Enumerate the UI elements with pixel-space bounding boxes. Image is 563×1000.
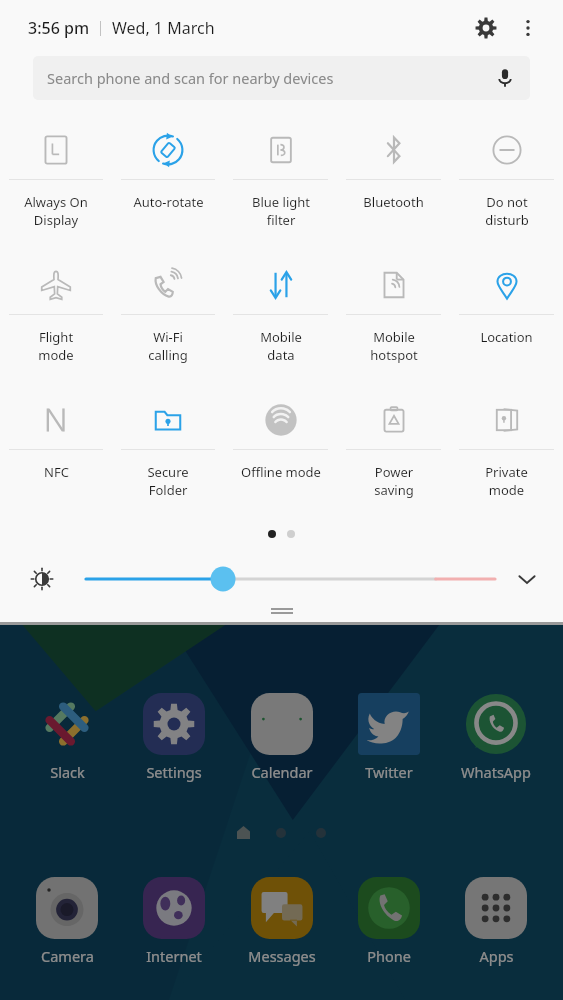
staticText: 3:56 pm xyxy=(28,17,90,39)
staticText: Calendar xyxy=(251,762,313,782)
button[interactable]: Settings xyxy=(465,7,507,49)
staticText: Flight mode xyxy=(38,328,74,364)
staticText: Camera xyxy=(41,946,94,966)
staticText: NFC xyxy=(44,463,69,481)
staticText: WhatsApp xyxy=(461,762,531,782)
button[interactable]: Always On Display xyxy=(0,115,112,250)
staticText: Phone xyxy=(367,946,411,966)
button[interactable]: Flight mode xyxy=(0,250,112,385)
staticText: Always On Display xyxy=(24,193,88,229)
staticText: Mobile data xyxy=(260,328,302,364)
button[interactable]: Internet xyxy=(126,875,222,968)
staticText: Apps xyxy=(479,946,514,966)
staticText: Search phone and scan for nearby devices xyxy=(47,68,334,88)
button[interactable]: Collapse panel xyxy=(0,600,563,622)
button[interactable]: Mobile data xyxy=(224,250,337,385)
button[interactable]: Phone xyxy=(341,875,437,968)
button[interactable]: Bluetooth xyxy=(337,115,450,250)
button[interactable]: Do not disturb xyxy=(450,115,563,250)
staticText: Wed, 1 March xyxy=(112,17,215,39)
button[interactable]: Private mode xyxy=(450,385,563,520)
button[interactable]: Auto-rotate xyxy=(112,115,224,250)
staticText: Do not disturb xyxy=(485,193,529,229)
button[interactable]: NFC xyxy=(0,385,112,520)
button[interactable]: Apps xyxy=(448,875,544,968)
button[interactable]: Slack xyxy=(19,691,115,784)
staticText: Auto-rotate xyxy=(133,193,204,211)
staticText: Location xyxy=(480,328,533,346)
button[interactable]: Messages xyxy=(234,875,330,968)
staticText: Blue light filter xyxy=(252,193,310,229)
staticText: Slack xyxy=(50,762,85,782)
staticText: Secure Folder xyxy=(147,463,189,499)
button[interactable] xyxy=(86,565,495,593)
staticText: Twitter xyxy=(365,762,413,782)
other: Voice search xyxy=(494,67,516,89)
staticText: Internet xyxy=(146,946,202,966)
staticText: Offline mode xyxy=(241,463,321,481)
button[interactable]: Twitter xyxy=(341,691,437,784)
staticText: Private mode xyxy=(485,463,528,499)
staticText: Settings xyxy=(146,762,202,782)
button[interactable]: Secure Folder xyxy=(112,385,224,520)
staticText: Bluetooth xyxy=(363,193,424,211)
button[interactable]: WhatsApp xyxy=(448,691,544,784)
staticText: Mobile hotspot xyxy=(370,328,418,364)
button[interactable]: Mobile hotspot xyxy=(337,250,450,385)
staticText: Power saving xyxy=(374,463,414,499)
button[interactable]: More options xyxy=(507,7,549,49)
other: Brightness xyxy=(28,565,56,593)
staticText: Messages xyxy=(248,946,316,966)
button[interactable]: Wi-Fi calling xyxy=(112,250,224,385)
button[interactable]: Settings xyxy=(126,691,222,784)
staticText: Wi-Fi calling xyxy=(148,328,188,364)
button[interactable]: Camera xyxy=(19,875,115,968)
button[interactable]: Location xyxy=(450,250,563,385)
button[interactable]: Power saving xyxy=(337,385,450,520)
button[interactable]: Calendar xyxy=(234,691,330,784)
button[interactable]: Expand brightness settings xyxy=(511,563,543,595)
button[interactable]: Blue light filter xyxy=(224,115,337,250)
button[interactable]: Offline mode xyxy=(224,385,337,520)
button[interactable]: Search phone and scan for nearby devices xyxy=(33,56,530,100)
